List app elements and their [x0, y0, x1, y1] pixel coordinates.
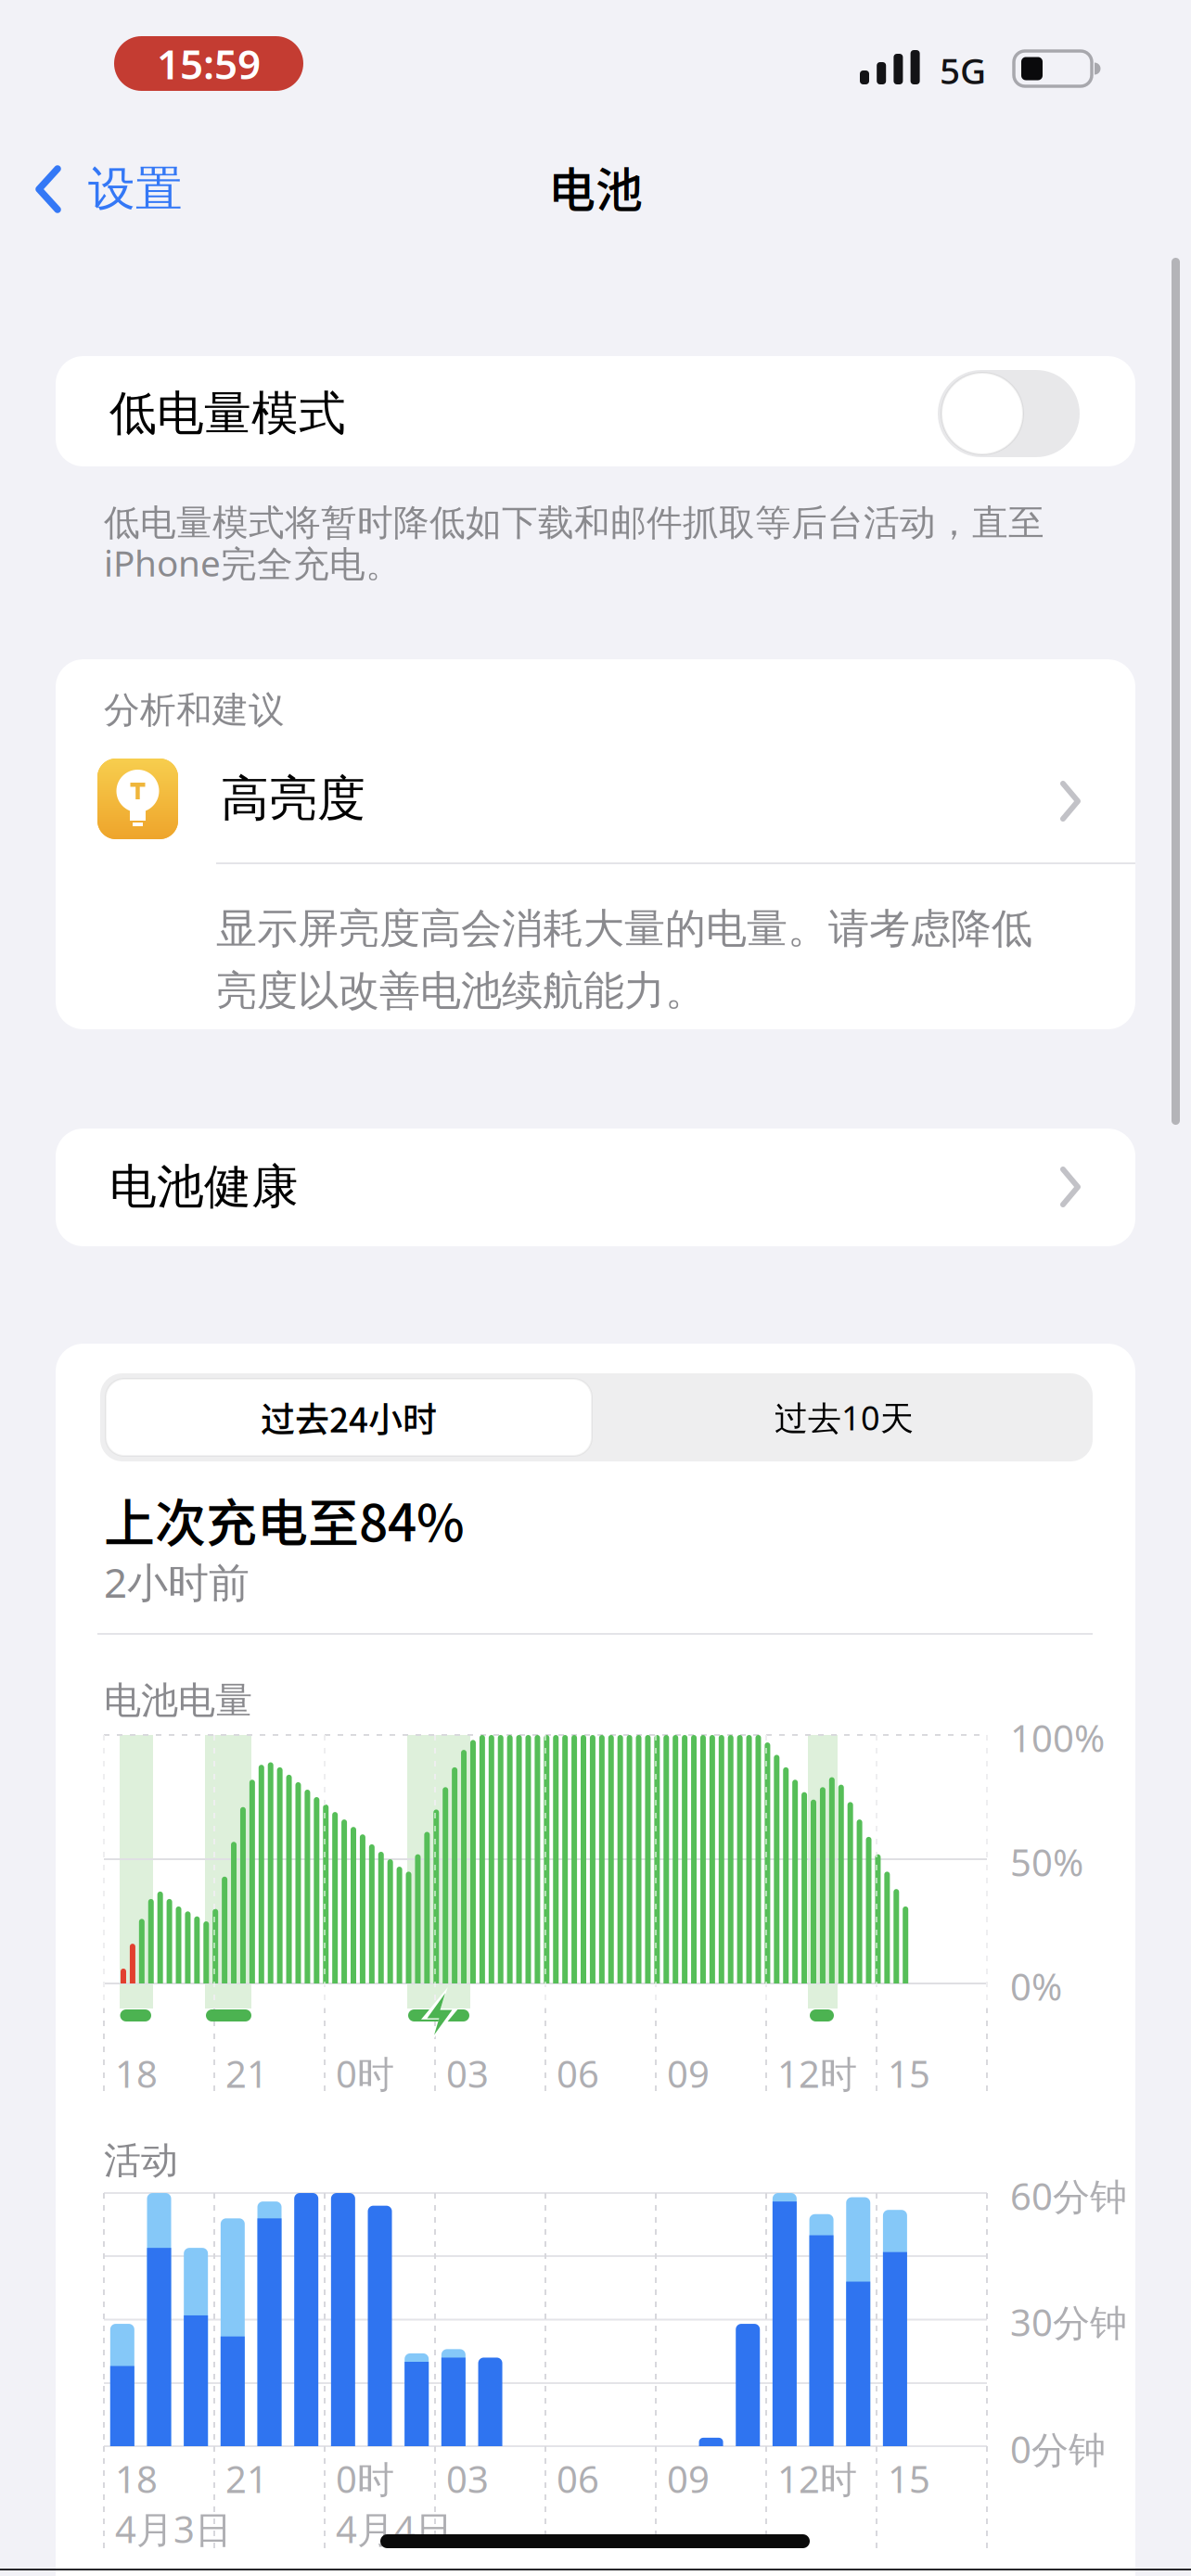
staticText: 06: [557, 2454, 599, 2503]
staticText: 15: [888, 2454, 930, 2503]
staticText: 过去10天: [775, 1395, 914, 1440]
staticText: 2小时前: [104, 1555, 250, 1609]
staticText: 09: [667, 2454, 710, 2503]
staticText: 03: [446, 2049, 489, 2098]
staticText: 电池: [548, 153, 643, 221]
staticText: 15: [888, 2049, 930, 2098]
staticText: 设置: [88, 160, 183, 218]
button[interactable]: 过去24小时: [106, 1379, 592, 1456]
staticText: 0%: [1010, 1962, 1062, 2011]
staticText: 18: [115, 2049, 158, 2098]
staticText: 50%: [1010, 1837, 1083, 1887]
staticText: 0时: [336, 2049, 394, 2098]
staticText: 06: [557, 2049, 599, 2098]
staticText: 4月4日: [336, 2504, 453, 2553]
button[interactable]: 电池健康: [56, 1129, 1135, 1246]
staticText: 亮度以改善电池续航能力。: [216, 966, 706, 1016]
button[interactable]: Stop recording: [114, 36, 303, 91]
staticText: 18: [115, 2454, 158, 2503]
staticText: 30分钟: [1010, 2297, 1127, 2346]
staticText: 21: [225, 2049, 268, 2098]
staticText: 分析和建议: [104, 688, 285, 732]
staticText: 12时: [777, 2454, 857, 2503]
staticText: 0分钟: [1010, 2424, 1106, 2474]
staticText: 03: [446, 2454, 489, 2503]
staticText: 0时: [336, 2454, 394, 2503]
staticText: 100%: [1010, 1713, 1105, 1762]
staticText: 21: [225, 2454, 268, 2503]
staticText: 活动: [104, 2138, 178, 2183]
staticText: 过去24小时: [261, 1393, 437, 1442]
staticText: 09: [667, 2049, 710, 2098]
staticText: 电池健康: [109, 1158, 299, 1216]
staticText: 显示屏亮度高会消耗大量的电量。请考虑降低: [216, 904, 1032, 954]
button[interactable]: 高亮度: [56, 659, 1135, 1029]
staticText: 12时: [777, 2049, 857, 2098]
staticText: 上次充电至84%: [104, 1482, 465, 1556]
staticText: 低电量模式: [109, 385, 346, 442]
staticText: 5G: [940, 46, 986, 94]
button[interactable]: Back: [34, 165, 238, 213]
staticText: 电池电量: [104, 1678, 252, 1723]
button[interactable]: 过去10天: [601, 1379, 1087, 1456]
staticText: iPhone完全充电。: [104, 539, 402, 587]
staticText: 低电量模式将暂时降低如下载和邮件抓取等后台活动，直至: [104, 501, 1044, 545]
staticText: 15:59: [157, 36, 261, 91]
staticText: 4月3日: [115, 2504, 232, 2553]
staticText: 高亮度: [221, 769, 365, 828]
button[interactable]: 低电量模式: [938, 370, 1080, 457]
staticText: 60分钟: [1010, 2171, 1127, 2220]
